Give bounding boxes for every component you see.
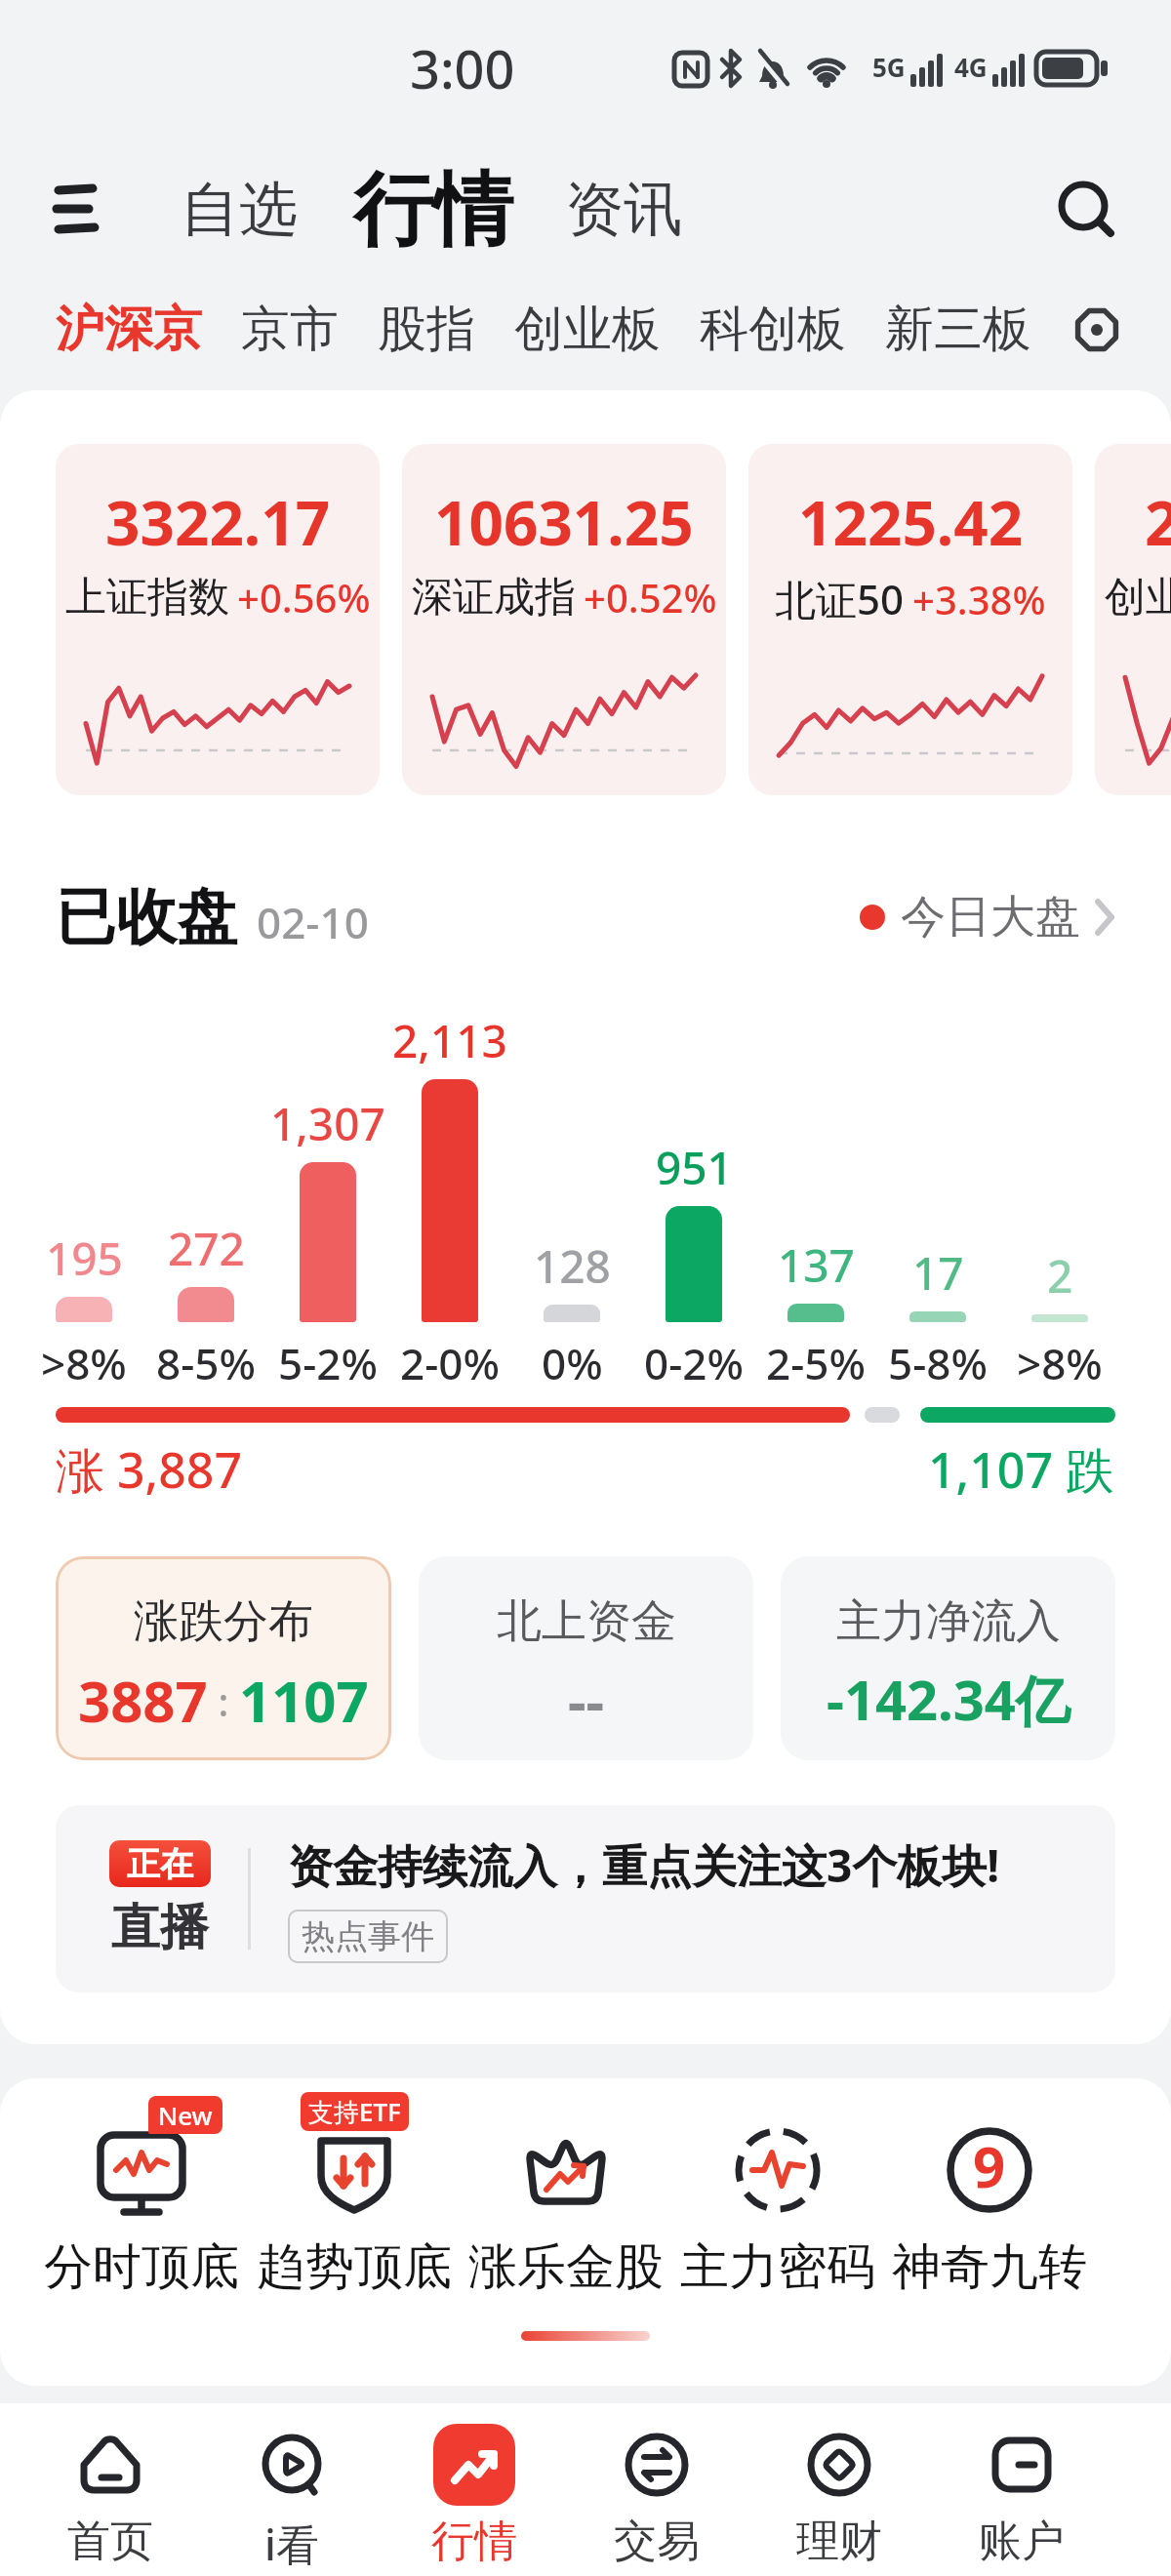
staticText: 8-5% bbox=[156, 1334, 256, 1388]
staticText: 正在 bbox=[127, 1843, 193, 1885]
staticText: 今日大盘 bbox=[901, 889, 1080, 946]
staticText: 上证指数 bbox=[65, 572, 229, 624]
staticText: 1,307 bbox=[270, 1093, 385, 1154]
button[interactable]: 今日大盘 bbox=[860, 889, 1115, 946]
staticText: 0% bbox=[542, 1334, 603, 1388]
staticText: 账户 bbox=[979, 2515, 1065, 2568]
button[interactable]: 交易 bbox=[565, 2409, 747, 2576]
staticText: 热点事件 bbox=[302, 1915, 434, 1957]
button[interactable]: 涨乐金股 bbox=[460, 2100, 671, 2298]
button[interactable]: 沪深京 bbox=[56, 299, 202, 360]
staticText: New bbox=[158, 2098, 213, 2132]
staticText: 4G bbox=[954, 50, 988, 84]
button[interactable]: 9 bbox=[883, 2100, 1095, 2298]
staticText: 资金持续流入，重点关注这3个板块! bbox=[288, 1834, 1000, 1896]
staticText: 3322.17 bbox=[105, 481, 331, 563]
button[interactable]: 创业板 bbox=[514, 299, 661, 360]
staticText: 涨乐金股 bbox=[468, 2236, 664, 2298]
button[interactable]: New bbox=[35, 2100, 248, 2298]
staticText: 分时顶底 bbox=[44, 2236, 239, 2298]
button[interactable]: 行情 bbox=[353, 160, 513, 261]
staticText: 137 bbox=[778, 1234, 855, 1296]
staticText: 128 bbox=[534, 1235, 611, 1297]
staticText: : bbox=[208, 1674, 239, 1727]
button[interactable]: 3322.17 bbox=[56, 444, 380, 795]
staticText: >8% bbox=[41, 1334, 127, 1388]
staticText: 272 bbox=[168, 1218, 245, 1279]
staticText: 1,107 跌 bbox=[928, 1436, 1115, 1495]
staticText: 主力净流入 bbox=[836, 1593, 1061, 1650]
staticText: 1225.42 bbox=[798, 481, 1024, 563]
staticText: -- bbox=[568, 1662, 605, 1739]
staticText: 北上资金 bbox=[497, 1593, 676, 1650]
button[interactable]: 行情 bbox=[383, 2409, 565, 2576]
button[interactable]: 北上资金 bbox=[419, 1556, 753, 1760]
staticText: 5G bbox=[872, 50, 906, 84]
staticText: 10631.25 bbox=[434, 481, 694, 563]
staticText: 02-10 bbox=[257, 893, 369, 951]
staticText: +0.56% bbox=[237, 571, 371, 624]
staticText: 2290.19 bbox=[1145, 481, 1171, 563]
staticText: 2-5% bbox=[766, 1334, 866, 1388]
staticText: i看 bbox=[264, 2515, 319, 2573]
staticText: 17 bbox=[912, 1242, 964, 1304]
staticText: 3:00 bbox=[410, 32, 515, 104]
staticText: 2,113 bbox=[392, 1010, 507, 1071]
button[interactable]: 主力密码 bbox=[671, 2100, 883, 2298]
staticText: 创业板指 bbox=[1105, 572, 1171, 624]
button[interactable] bbox=[1071, 304, 1122, 355]
staticText: 2-0% bbox=[400, 1334, 500, 1388]
staticText: 行情 bbox=[431, 2515, 517, 2568]
staticText: 5-2% bbox=[278, 1334, 378, 1388]
button[interactable]: 新三板 bbox=[885, 299, 1031, 360]
button[interactable]: 主力净流入 bbox=[781, 1556, 1115, 1760]
button[interactable]: 理财 bbox=[747, 2409, 930, 2576]
button[interactable]: 股指 bbox=[378, 299, 475, 360]
staticText: 北证50 bbox=[775, 571, 905, 626]
staticText: 195 bbox=[46, 1228, 123, 1289]
staticText: 神奇九转 bbox=[892, 2236, 1087, 2298]
button[interactable]: 账户 bbox=[930, 2409, 1112, 2576]
staticText: >8% bbox=[1017, 1334, 1103, 1388]
button[interactable]: 首页 bbox=[20, 2409, 201, 2576]
staticText: 5-8% bbox=[888, 1334, 988, 1388]
staticText: 主力密码 bbox=[680, 2236, 875, 2298]
staticText: 3887 bbox=[78, 1662, 208, 1739]
button[interactable]: i看 bbox=[201, 2409, 383, 2576]
staticText: 趋势顶底 bbox=[257, 2236, 452, 2298]
button[interactable]: 正在 bbox=[56, 1805, 1115, 1992]
staticText: 0-2% bbox=[644, 1334, 744, 1388]
button[interactable]: 支持ETF bbox=[248, 2100, 460, 2298]
button[interactable] bbox=[1059, 181, 1115, 238]
staticText: 交易 bbox=[614, 2515, 700, 2568]
button[interactable]: 京市 bbox=[241, 299, 339, 360]
staticText: +3.38% bbox=[912, 573, 1046, 625]
button[interactable]: 涨跌分布 bbox=[56, 1556, 391, 1760]
staticText: 涨跌分布 bbox=[134, 1593, 313, 1650]
button[interactable]: 自选 bbox=[181, 173, 298, 247]
staticText: 9 bbox=[973, 2127, 1006, 2204]
staticText: 951 bbox=[656, 1137, 733, 1198]
staticText: 理财 bbox=[796, 2515, 882, 2568]
staticText: 深证成指 bbox=[412, 572, 576, 624]
staticText: +0.52% bbox=[584, 571, 717, 624]
staticText: 涨 3,887 bbox=[56, 1436, 243, 1495]
button[interactable]: 10631.25 bbox=[402, 444, 726, 795]
button[interactable]: 资讯 bbox=[565, 173, 682, 247]
button[interactable]: 1225.42 bbox=[748, 444, 1072, 795]
staticText: 直播 bbox=[111, 1897, 209, 1958]
staticText: 1107 bbox=[239, 1662, 369, 1739]
button[interactable]: 科创板 bbox=[700, 299, 846, 360]
button[interactable]: 2290.19 bbox=[1095, 444, 1171, 795]
staticText: 2 bbox=[1047, 1245, 1073, 1307]
button[interactable] bbox=[56, 184, 99, 235]
staticText: -142.34亿 bbox=[827, 1662, 1070, 1736]
staticText: 已收盘 bbox=[56, 879, 237, 955]
staticText: 首页 bbox=[67, 2515, 153, 2568]
staticText: 支持ETF bbox=[308, 2094, 401, 2129]
